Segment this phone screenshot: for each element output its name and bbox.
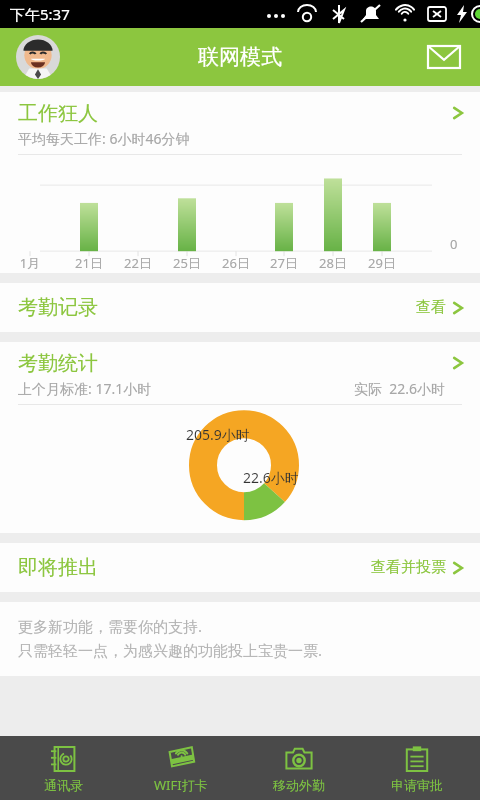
button[interactable]: 申请审批 [362,736,472,800]
button[interactable]: 通讯录 [8,736,118,800]
staticText: 即将推出 [18,555,98,580]
staticText: 上个月标准: 17.1小时 [18,379,152,398]
staticText: 0 [450,235,458,253]
staticText: 通讯录 [44,777,83,793]
button[interactable]: 考勤记录 [0,283,480,332]
staticText: 27日 [268,254,300,272]
button[interactable]: 考勤统计 [0,342,480,398]
button[interactable]: WIFI打卡 [126,736,236,800]
staticText: 查看并投票 [371,558,446,577]
staticText: 22.6小时 [243,468,299,487]
staticText: 移动外勤 [273,777,325,793]
staticText: 25日 [171,254,203,272]
button[interactable]: Messages [422,35,466,79]
staticText: 205.9小时 [186,425,250,444]
staticText: 考勤记录 [18,295,98,320]
staticText: 21日 [73,254,105,272]
staticText: 1月 [14,254,46,272]
staticText: 29日 [366,254,398,272]
staticText: WIFI打卡 [154,776,208,794]
staticText: 查看 [416,298,446,317]
staticText: 22日 [122,254,154,272]
staticText: 更多新功能，需要你的支持. [18,616,203,636]
staticText: 工作狂人 [18,101,98,126]
button[interactable]: 即将推出 [0,543,480,592]
button[interactable]: 工作狂人 [0,92,480,273]
staticText: 28日 [317,254,349,272]
button[interactable]: 移动外勤 [244,736,354,800]
staticText: 只需轻轻一点，为感兴趣的功能投上宝贵一票. [18,640,323,660]
staticText: 下午5:37 [10,4,70,24]
staticText: 实际 22.6小时 [354,379,446,398]
button[interactable]: Profile [16,35,60,79]
staticText: 平均每天工作: 6小时46分钟 [18,129,190,148]
staticText: 联网模式 [198,44,282,70]
staticText: 26日 [220,254,252,272]
staticText: 申请审批 [391,777,443,793]
staticText: 考勤统计 [18,351,98,376]
